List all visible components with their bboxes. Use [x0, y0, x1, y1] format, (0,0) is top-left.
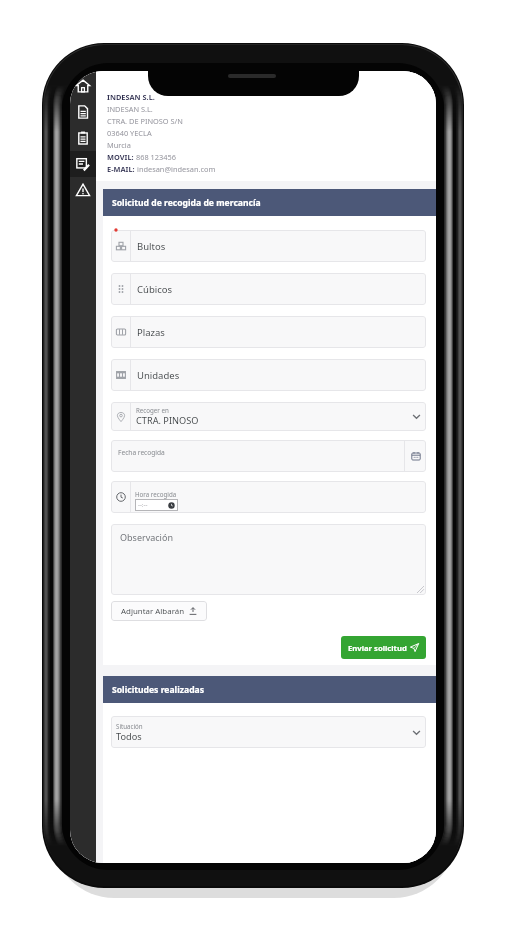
staticText: E-MAIL: — [107, 164, 137, 174]
button[interactable]: Unidades — [111, 359, 426, 391]
staticText: 868 123456 — [136, 152, 176, 162]
staticText: INDESAN S.L. — [107, 92, 155, 102]
button[interactable]: Pick date — [405, 440, 426, 472]
button[interactable]: Requests — [70, 151, 96, 177]
staticText: Solicitudes realizadas — [112, 684, 205, 696]
button[interactable]: Orders — [70, 125, 96, 151]
button[interactable]: Situación — [111, 716, 426, 748]
staticText: indesan@indesan.com — [137, 164, 216, 174]
button[interactable]: Plazas — [111, 316, 426, 348]
button[interactable]: Recoger en — [111, 402, 426, 431]
staticText: CTRA. DE PINOSO S/N — [107, 116, 183, 126]
staticText: Adjuntar Albarán — [121, 606, 185, 617]
staticText: Murcia — [107, 140, 131, 150]
staticText: Enviar solicitud — [348, 643, 407, 653]
button[interactable]: Enviar solicitud — [341, 636, 426, 659]
staticText: Unidades — [137, 369, 180, 382]
button[interactable]: Documents — [70, 99, 96, 125]
button[interactable]: Adjuntar Albarán — [111, 601, 207, 621]
staticText: Fecha recogida — [118, 448, 404, 457]
staticText: Solicitud de recogida de mercancía — [112, 197, 261, 209]
staticText: Hora recogida — [135, 490, 177, 498]
button[interactable]: Hora recogida — [111, 481, 426, 513]
staticText: Plazas — [137, 326, 165, 339]
staticText: Situación — [116, 722, 143, 730]
staticText: Bultos — [137, 240, 166, 253]
staticText: 03640 YECLA — [107, 128, 152, 138]
staticText: Todos — [116, 730, 142, 743]
button[interactable]: Home — [70, 73, 96, 99]
button[interactable]: Bultos — [111, 230, 426, 262]
staticText: Cúbicos — [137, 283, 173, 296]
button[interactable]: Observación — [111, 524, 426, 595]
button[interactable]: Fecha recogida — [111, 440, 426, 472]
staticText: INDESAN S.L. — [107, 104, 153, 114]
button[interactable]: Cúbicos — [111, 273, 426, 305]
staticText: --:-- — [138, 501, 148, 509]
staticText: CTRA. PINOSO — [136, 414, 199, 427]
staticText: Observación — [120, 531, 173, 543]
button[interactable]: Incidents — [70, 177, 96, 203]
staticText: MOVIL: — [107, 152, 136, 162]
staticText: Recoger en — [136, 406, 169, 414]
